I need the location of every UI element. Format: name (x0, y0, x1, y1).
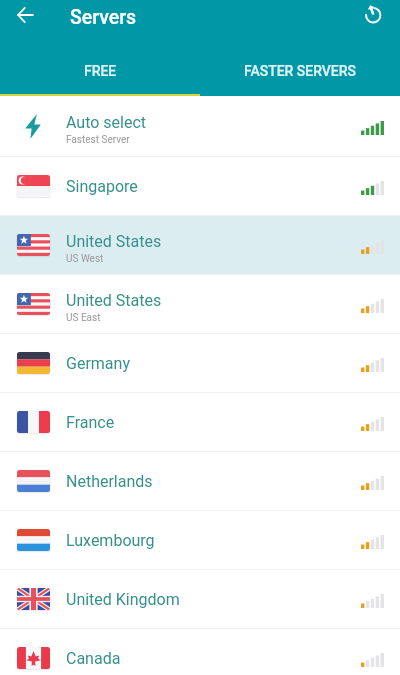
staticText: FASTER SERVERS (244, 63, 356, 79)
staticText: Servers (70, 6, 137, 29)
staticText: Singapore (66, 177, 138, 196)
staticText: US East (66, 312, 101, 324)
staticText: Auto select (66, 113, 147, 132)
button[interactable]: United States (0, 216, 400, 274)
button[interactable]: Germany (0, 334, 400, 392)
staticText: US West (66, 253, 104, 265)
button[interactable]: Refresh (358, 0, 388, 29)
staticText: FREE (84, 63, 117, 79)
staticText: Canada (66, 649, 121, 668)
staticText: Fastest Server (66, 134, 130, 146)
staticText: France (66, 413, 115, 432)
button[interactable]: United Kingdom (0, 570, 400, 628)
staticText: Germany (66, 354, 130, 373)
button[interactable]: FASTER SERVERS (200, 35, 400, 96)
button[interactable]: FREE (0, 35, 200, 96)
button[interactable]: Auto select (0, 96, 400, 156)
staticText: United Kingdom (66, 590, 180, 609)
button[interactable]: France (0, 393, 400, 451)
button[interactable]: Luxembourg (0, 511, 400, 569)
button[interactable]: Netherlands (0, 452, 400, 510)
button[interactable]: Back (10, 0, 40, 30)
staticText: Luxembourg (66, 531, 155, 550)
staticText: United States (66, 232, 162, 251)
button[interactable]: Singapore (0, 157, 400, 215)
staticText: Netherlands (66, 472, 153, 491)
staticText: United States (66, 291, 162, 310)
button[interactable]: United States (0, 275, 400, 333)
button[interactable]: Canada (0, 629, 400, 675)
